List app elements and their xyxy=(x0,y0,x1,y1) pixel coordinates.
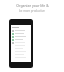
staticText: Organize your life & xyxy=(16,3,49,8)
button[interactable] xyxy=(11,44,31,47)
button[interactable] xyxy=(11,32,31,35)
button[interactable] xyxy=(11,35,31,38)
button[interactable] xyxy=(11,38,31,41)
button[interactable] xyxy=(11,53,31,56)
button[interactable] xyxy=(11,47,31,50)
button[interactable] xyxy=(11,41,31,44)
staticText: be more productive xyxy=(19,9,45,13)
button[interactable] xyxy=(11,50,31,53)
button[interactable] xyxy=(11,29,31,32)
button[interactable] xyxy=(11,56,31,59)
